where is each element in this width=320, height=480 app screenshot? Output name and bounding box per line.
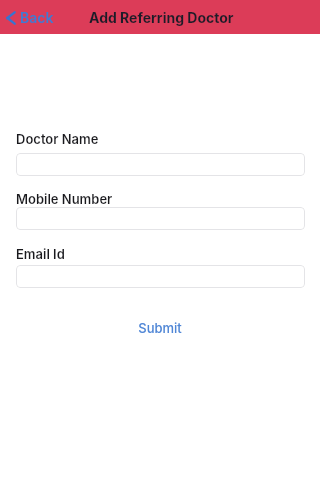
button[interactable]: Email Id input (16, 265, 305, 288)
button[interactable]: Doctor Name input (16, 153, 305, 176)
staticText: Mobile Number (16, 191, 113, 207)
button[interactable]: Mobile Number input (16, 207, 305, 230)
staticText: Add Referring Doctor (89, 9, 234, 26)
button[interactable]: Back (0, 5, 60, 30)
staticText: Email Id (16, 246, 65, 262)
staticText: Back (20, 9, 54, 26)
staticText: Submit (138, 320, 182, 336)
button[interactable]: Submit (126, 316, 194, 340)
other: Back (6, 11, 16, 25)
staticText: Doctor Name (16, 131, 99, 147)
